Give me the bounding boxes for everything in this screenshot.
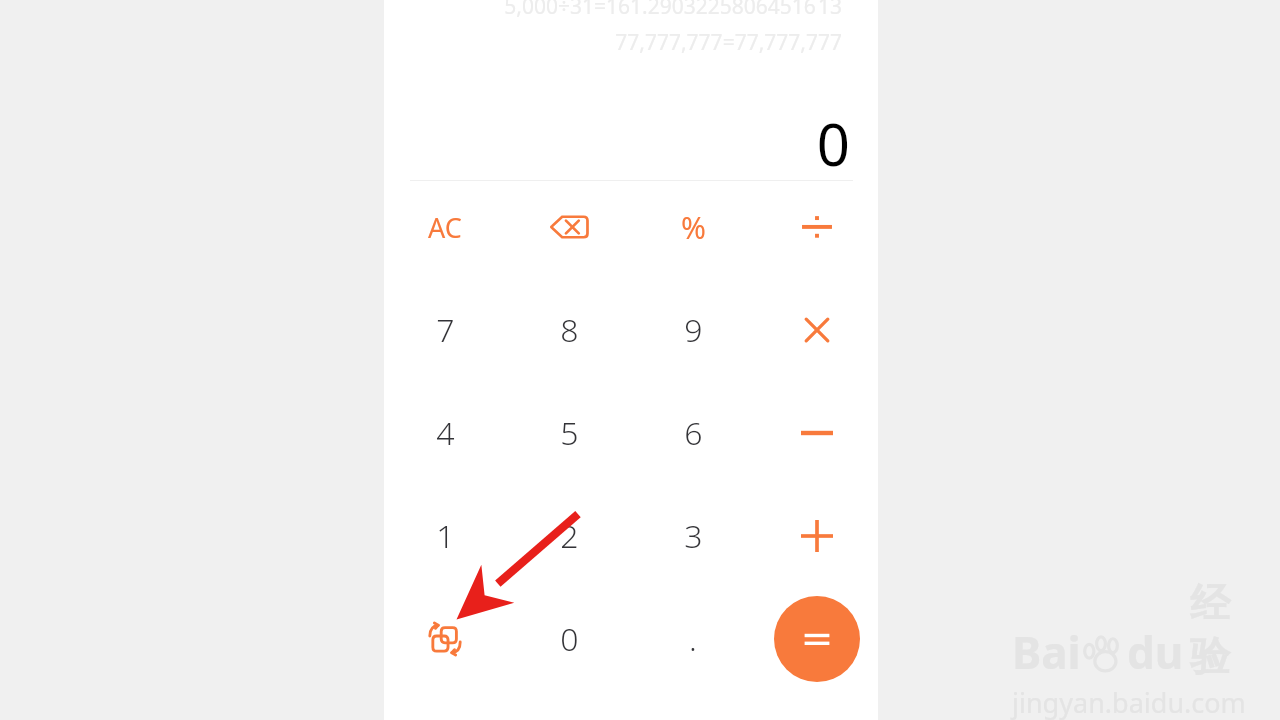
staticText: 0 xyxy=(560,617,579,661)
staticText: 3 xyxy=(684,514,703,558)
button[interactable]: 4 xyxy=(385,383,505,483)
staticText: 8 xyxy=(560,308,579,352)
staticText: . xyxy=(689,617,697,661)
staticText: jingyan.baidu.com xyxy=(1012,684,1246,720)
staticText: 经验 xyxy=(1190,578,1262,682)
button[interactable]: . xyxy=(633,589,753,689)
button[interactable]: % xyxy=(633,177,753,277)
button[interactable]: Equals xyxy=(774,596,860,682)
button[interactable]: Backspace xyxy=(509,177,629,277)
button[interactable]: 7 xyxy=(385,280,505,380)
staticText: 4 xyxy=(436,411,455,455)
button[interactable]: 5 xyxy=(509,383,629,483)
button[interactable]: 0 xyxy=(509,589,629,689)
button[interactable]: Unit converter xyxy=(385,589,505,689)
staticText: Bai xyxy=(1012,622,1081,682)
button[interactable]: 1 xyxy=(385,486,505,586)
button[interactable]: 6 xyxy=(633,383,753,483)
button[interactable]: Multiply xyxy=(757,280,877,380)
staticText: 7 xyxy=(436,308,455,352)
staticText: 5 xyxy=(560,411,579,455)
staticText: 2 xyxy=(560,514,579,558)
staticText: % xyxy=(681,207,706,248)
button[interactable]: 8 xyxy=(509,280,629,380)
staticText: 9 xyxy=(684,308,703,352)
staticText: du xyxy=(1127,622,1184,682)
staticText: 0 xyxy=(384,104,850,183)
staticText: 77,777,777=77,777,777 xyxy=(384,28,842,57)
button[interactable]: Plus xyxy=(757,486,877,586)
button[interactable]: 3 xyxy=(633,486,753,586)
button[interactable]: AC xyxy=(385,177,505,277)
button[interactable]: 2 xyxy=(509,486,629,586)
staticText: 6 xyxy=(684,411,703,455)
staticText: AC xyxy=(428,209,462,246)
button[interactable]: 9 xyxy=(633,280,753,380)
button[interactable]: Divide xyxy=(757,177,877,277)
staticText: 5,000÷31=161.29032258064516 13 xyxy=(384,0,842,21)
staticText: 1 xyxy=(436,514,455,558)
button[interactable]: Minus xyxy=(757,383,877,483)
